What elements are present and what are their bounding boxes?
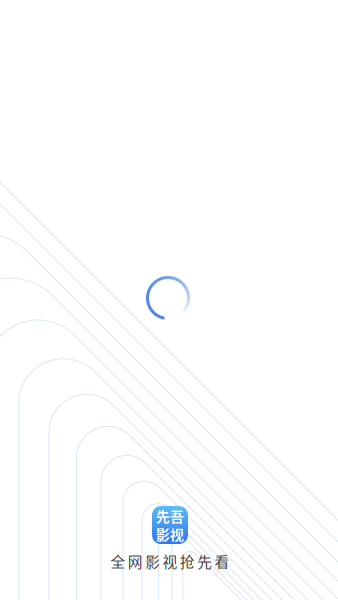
staticText: 先吾 xyxy=(156,506,184,526)
staticText: 全网影视抢先看 xyxy=(110,550,230,572)
staticText: 影视 xyxy=(156,524,184,544)
button[interactable]: 先吾影视 xyxy=(152,506,188,544)
